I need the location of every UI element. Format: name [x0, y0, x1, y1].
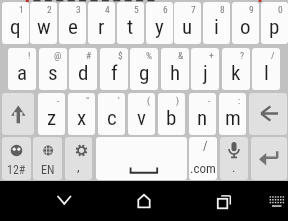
staticText: $ — [118, 50, 123, 61]
button[interactable]: o — [232, 2, 259, 44]
staticText: # — [86, 50, 92, 61]
staticText: f — [111, 61, 118, 86]
staticText: 8 — [220, 4, 225, 15]
staticText: : — [238, 95, 241, 106]
staticText: r — [98, 15, 105, 40]
staticText: 12# — [7, 163, 26, 177]
staticText: 0 — [278, 4, 283, 15]
staticText: ! — [28, 50, 31, 61]
button[interactable]: w — [30, 2, 57, 44]
staticText: m — [225, 106, 241, 131]
staticText: c — [107, 106, 117, 131]
staticText: t — [127, 15, 134, 40]
staticText: . — [232, 160, 236, 175]
staticText: e — [68, 15, 78, 40]
button[interactable]: i — [203, 2, 230, 44]
button[interactable]: r — [88, 2, 115, 44]
staticText: 1 — [19, 4, 24, 15]
button[interactable] — [130, 186, 158, 214]
staticText: w — [37, 15, 51, 40]
staticText: u — [182, 15, 193, 40]
button[interactable]: y — [146, 2, 173, 44]
staticText: 6 — [163, 4, 168, 15]
staticText: a — [17, 61, 28, 86]
staticText: & — [178, 50, 184, 61]
staticText: " — [86, 95, 90, 106]
staticText: 7 — [191, 4, 196, 15]
button[interactable]: t — [117, 2, 144, 44]
button[interactable]: s — [39, 48, 67, 90]
button[interactable] — [249, 93, 287, 135]
button[interactable] — [96, 137, 187, 180]
staticText: 5 — [134, 4, 139, 15]
button[interactable] — [2, 93, 34, 135]
staticText: x — [77, 106, 87, 131]
button[interactable]: u — [174, 2, 201, 44]
button[interactable]: / — [189, 137, 217, 180]
button[interactable]: , — [65, 137, 92, 180]
staticText: p — [269, 15, 280, 40]
button[interactable]: l — [252, 48, 280, 90]
button[interactable] — [262, 189, 286, 209]
staticText: g — [139, 61, 150, 86]
staticText: b — [166, 106, 177, 131]
button[interactable]: j — [191, 48, 219, 90]
staticText: z — [47, 106, 57, 131]
staticText: s — [48, 61, 58, 86]
staticText: j — [203, 61, 208, 86]
staticText: - — [208, 95, 211, 106]
staticText: v — [137, 106, 146, 131]
staticText: d — [78, 61, 89, 86]
staticText: 3 — [76, 4, 81, 15]
button[interactable]: n — [189, 93, 216, 135]
staticText: EN — [41, 163, 55, 177]
staticText: q — [10, 15, 21, 40]
staticText: ? — [240, 50, 245, 61]
staticText: i — [214, 15, 219, 40]
button[interactable]: . — [220, 137, 248, 180]
staticText: / — [203, 139, 208, 153]
button[interactable]: f — [100, 48, 128, 90]
button[interactable]: d — [69, 48, 97, 90]
button[interactable]: v — [128, 93, 155, 135]
button[interactable]: h — [161, 48, 189, 90]
staticText: , — [77, 159, 80, 174]
button[interactable]: a — [8, 48, 36, 90]
button[interactable]: q — [2, 2, 29, 44]
staticText: ' — [118, 95, 120, 106]
staticText: k — [231, 61, 241, 86]
button[interactable] — [208, 186, 236, 214]
button[interactable]: p — [261, 2, 288, 44]
staticText: n — [197, 106, 208, 131]
button[interactable]: b — [158, 93, 185, 135]
button[interactable]: EN — [33, 137, 62, 180]
staticText: / — [271, 50, 275, 61]
button[interactable] — [50, 186, 78, 214]
staticText: .com — [190, 161, 216, 176]
button[interactable]: c — [98, 93, 125, 135]
button[interactable]: x — [68, 93, 95, 135]
staticText: % — [146, 50, 153, 61]
staticText: - — [57, 95, 60, 106]
staticText: + — [209, 50, 214, 61]
button[interactable] — [251, 137, 287, 180]
button[interactable]: e — [59, 2, 86, 44]
button[interactable]: 12# — [2, 137, 31, 180]
staticText: @ — [54, 50, 62, 61]
staticText: y — [155, 15, 164, 40]
button[interactable]: g — [130, 48, 158, 90]
button[interactable]: z — [38, 93, 65, 135]
button[interactable]: m — [219, 93, 246, 135]
staticText: ( — [147, 95, 150, 106]
staticText: 9 — [249, 4, 254, 15]
staticText: h — [170, 61, 181, 86]
staticText: l — [264, 61, 269, 86]
staticText: 4 — [105, 4, 110, 15]
staticText: 2 — [47, 4, 52, 15]
staticText: ) — [176, 95, 180, 106]
staticText: o — [240, 15, 251, 40]
button[interactable]: k — [222, 48, 250, 90]
